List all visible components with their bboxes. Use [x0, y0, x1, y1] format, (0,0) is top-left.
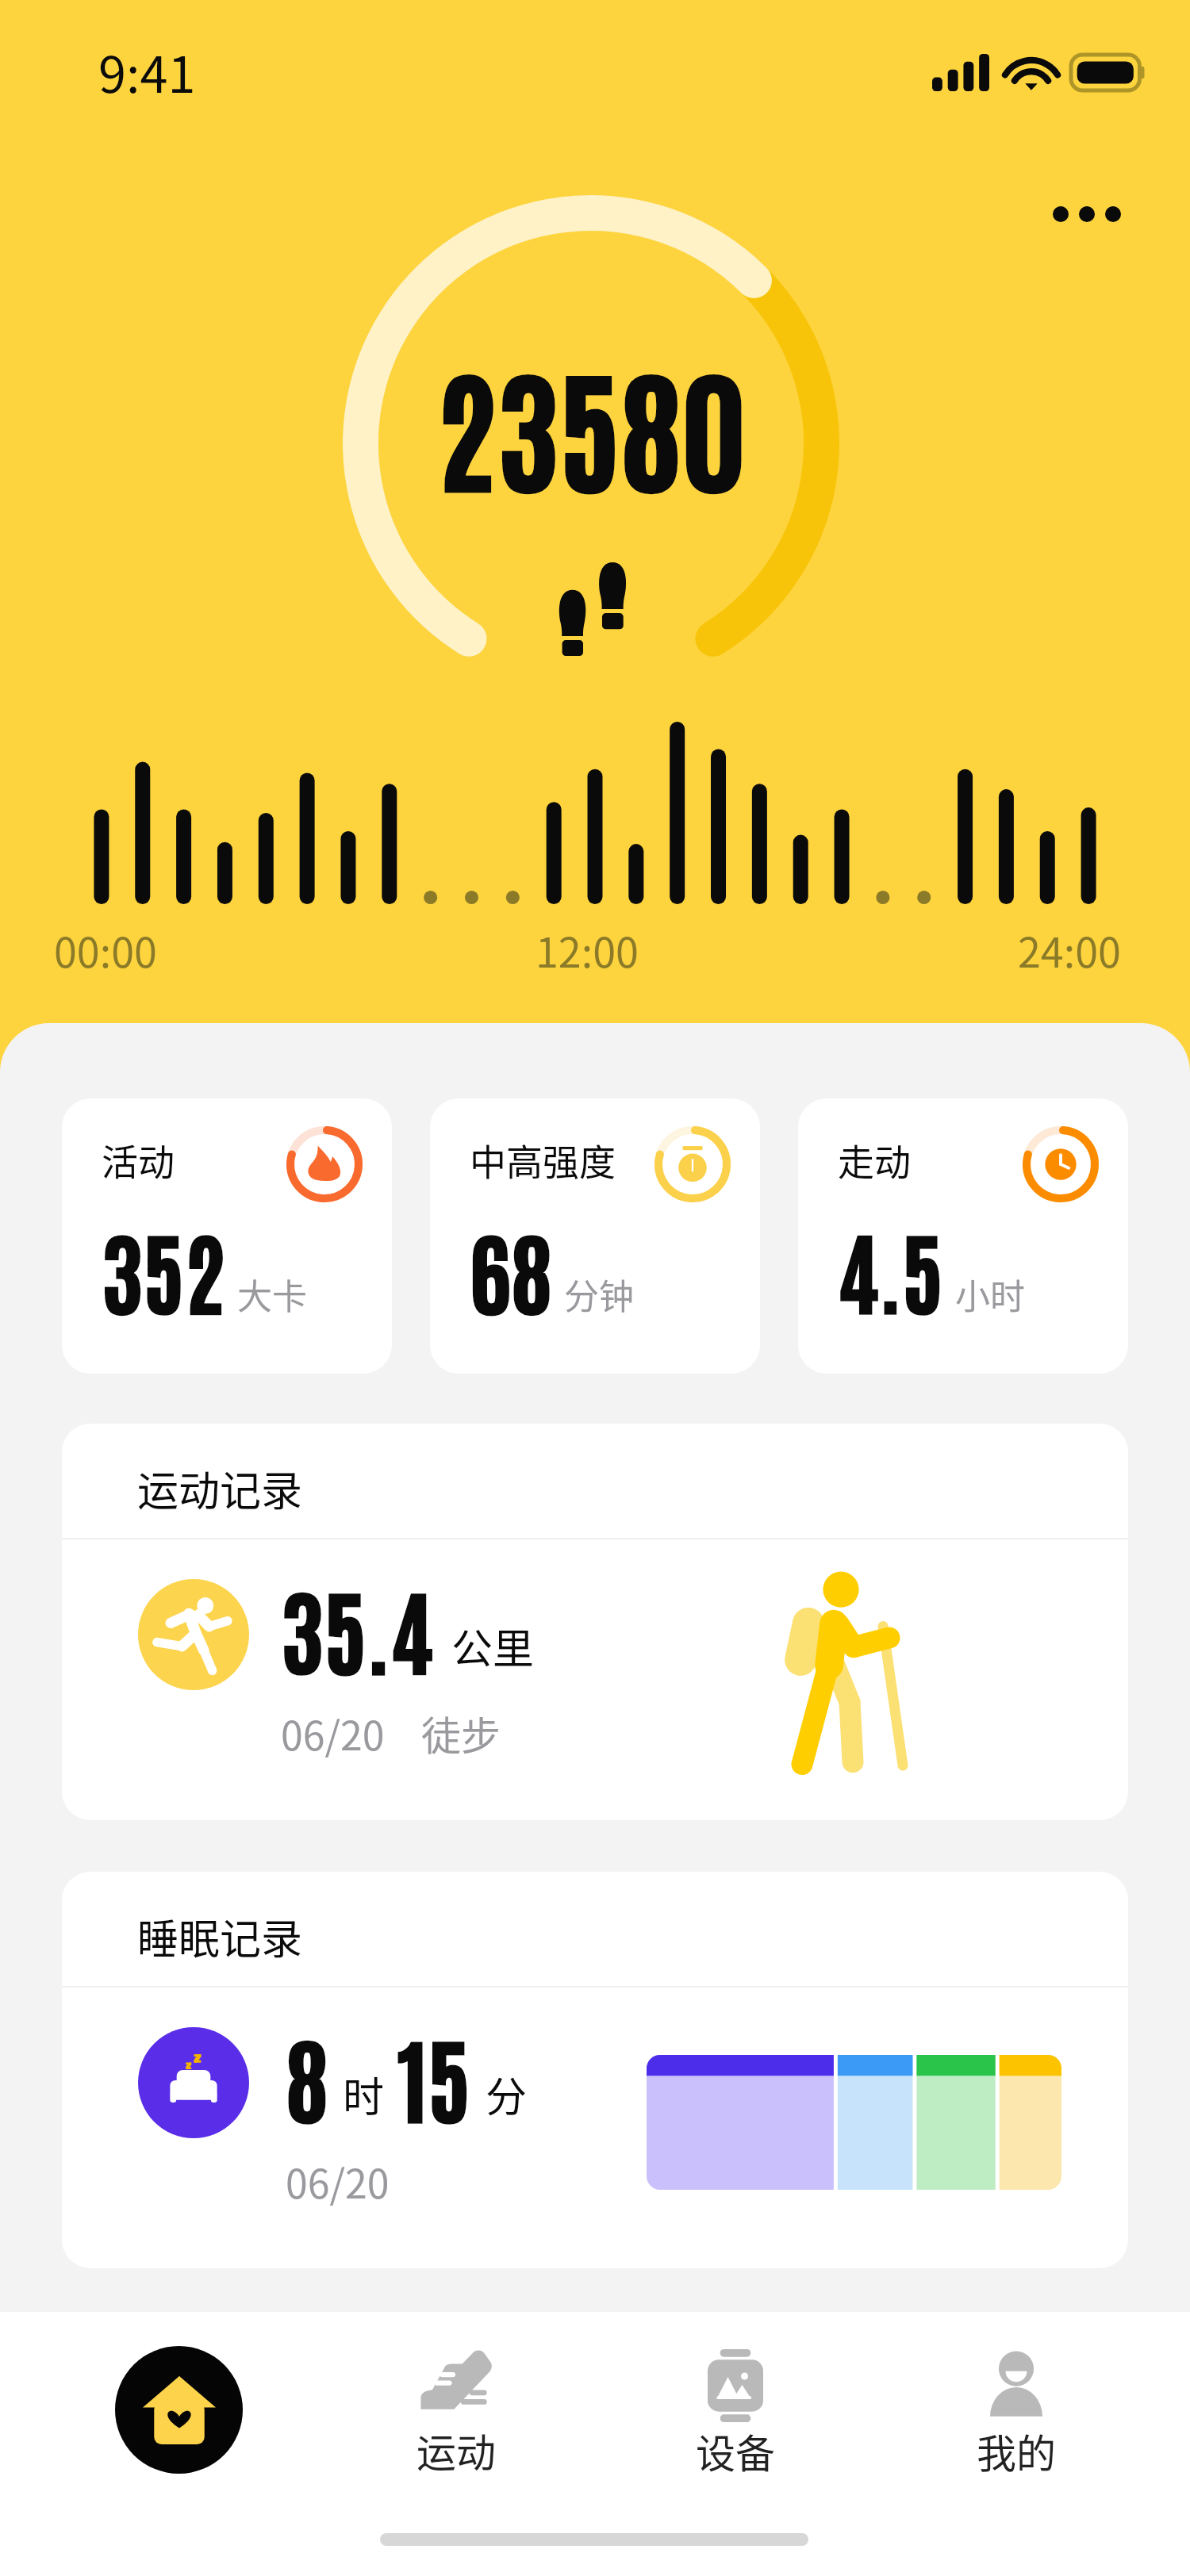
staticText: 352	[102, 1211, 226, 1326]
staticText: 35.4	[281, 1568, 434, 1687]
staticText: 00:00	[54, 920, 157, 979]
button[interactable]: 中高强度	[430, 1098, 760, 1374]
button[interactable]: 走动	[798, 1098, 1128, 1374]
staticText: 小时	[955, 1269, 1025, 1320]
button[interactable]: 睡眠记录	[62, 1872, 1128, 2268]
button[interactable]: 我的	[925, 2325, 1107, 2508]
staticText: 运动	[416, 2421, 496, 2478]
staticText: 大卡	[237, 1269, 307, 1320]
staticText: 23580	[436, 339, 747, 509]
button[interactable]: 活动	[62, 1098, 392, 1374]
staticText: 4.5	[838, 1211, 944, 1326]
staticText: 分钟	[564, 1269, 634, 1320]
staticText: 睡眠记录	[137, 1907, 303, 1966]
staticText: 走动	[838, 1133, 911, 1186]
staticText: 分	[486, 2064, 528, 2124]
staticText: 设备	[696, 2422, 775, 2479]
staticText: 时	[343, 2064, 385, 2124]
staticText: 中高强度	[470, 1133, 616, 1186]
button[interactable]: More options	[1039, 167, 1134, 262]
button[interactable]: Home	[87, 2318, 270, 2501]
staticText: 06/20	[281, 1704, 385, 1761]
staticText: 运动记录	[137, 1459, 303, 1518]
button[interactable]: 运动记录	[62, 1424, 1128, 1820]
staticText: 06/20	[286, 2152, 390, 2210]
staticText: 公里	[451, 1616, 535, 1676]
staticText: 24:00	[1018, 920, 1121, 979]
staticText: 我的	[977, 2422, 1056, 2479]
staticText: 8	[286, 2016, 328, 2135]
staticText: 9:41	[98, 35, 196, 107]
button[interactable]: 运动	[365, 2325, 547, 2507]
staticText: 徒步	[421, 1704, 501, 1761]
button[interactable]: 设备	[644, 2325, 827, 2508]
staticText: 68	[470, 1211, 553, 1326]
staticText: 12:00	[535, 920, 639, 979]
staticText: 15	[397, 2016, 471, 2135]
staticText: 活动	[102, 1133, 175, 1186]
